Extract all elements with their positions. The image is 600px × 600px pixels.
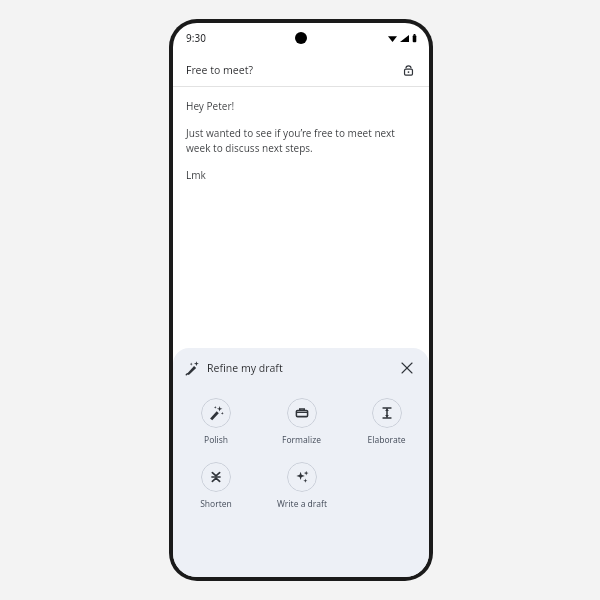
staticText: Hey Peter!	[186, 99, 235, 113]
staticText: Polish	[204, 434, 228, 446]
button[interactable]: Shorten	[173, 460, 259, 512]
staticText: Shorten	[200, 498, 232, 510]
staticText: 9:30	[186, 31, 206, 45]
button[interactable]: Write a draft	[259, 460, 344, 512]
staticText: Formalize	[282, 434, 321, 446]
button[interactable]: Close	[396, 357, 418, 379]
staticText: Free to meet?	[186, 63, 254, 77]
staticText: Elaborate	[367, 434, 406, 446]
button[interactable]: Formalize	[259, 396, 344, 448]
button[interactable]: Encrypted	[400, 62, 416, 78]
staticText: Lmk	[186, 168, 206, 182]
button[interactable]: Polish	[173, 396, 259, 448]
staticText: Write a draft	[277, 498, 327, 510]
staticText: Just wanted to see if you’re free to mee…	[186, 126, 416, 155]
staticText: Refine my draft	[207, 361, 283, 375]
button[interactable]: Free to meet?	[173, 53, 429, 86]
button[interactable]: Elaborate	[344, 396, 429, 448]
